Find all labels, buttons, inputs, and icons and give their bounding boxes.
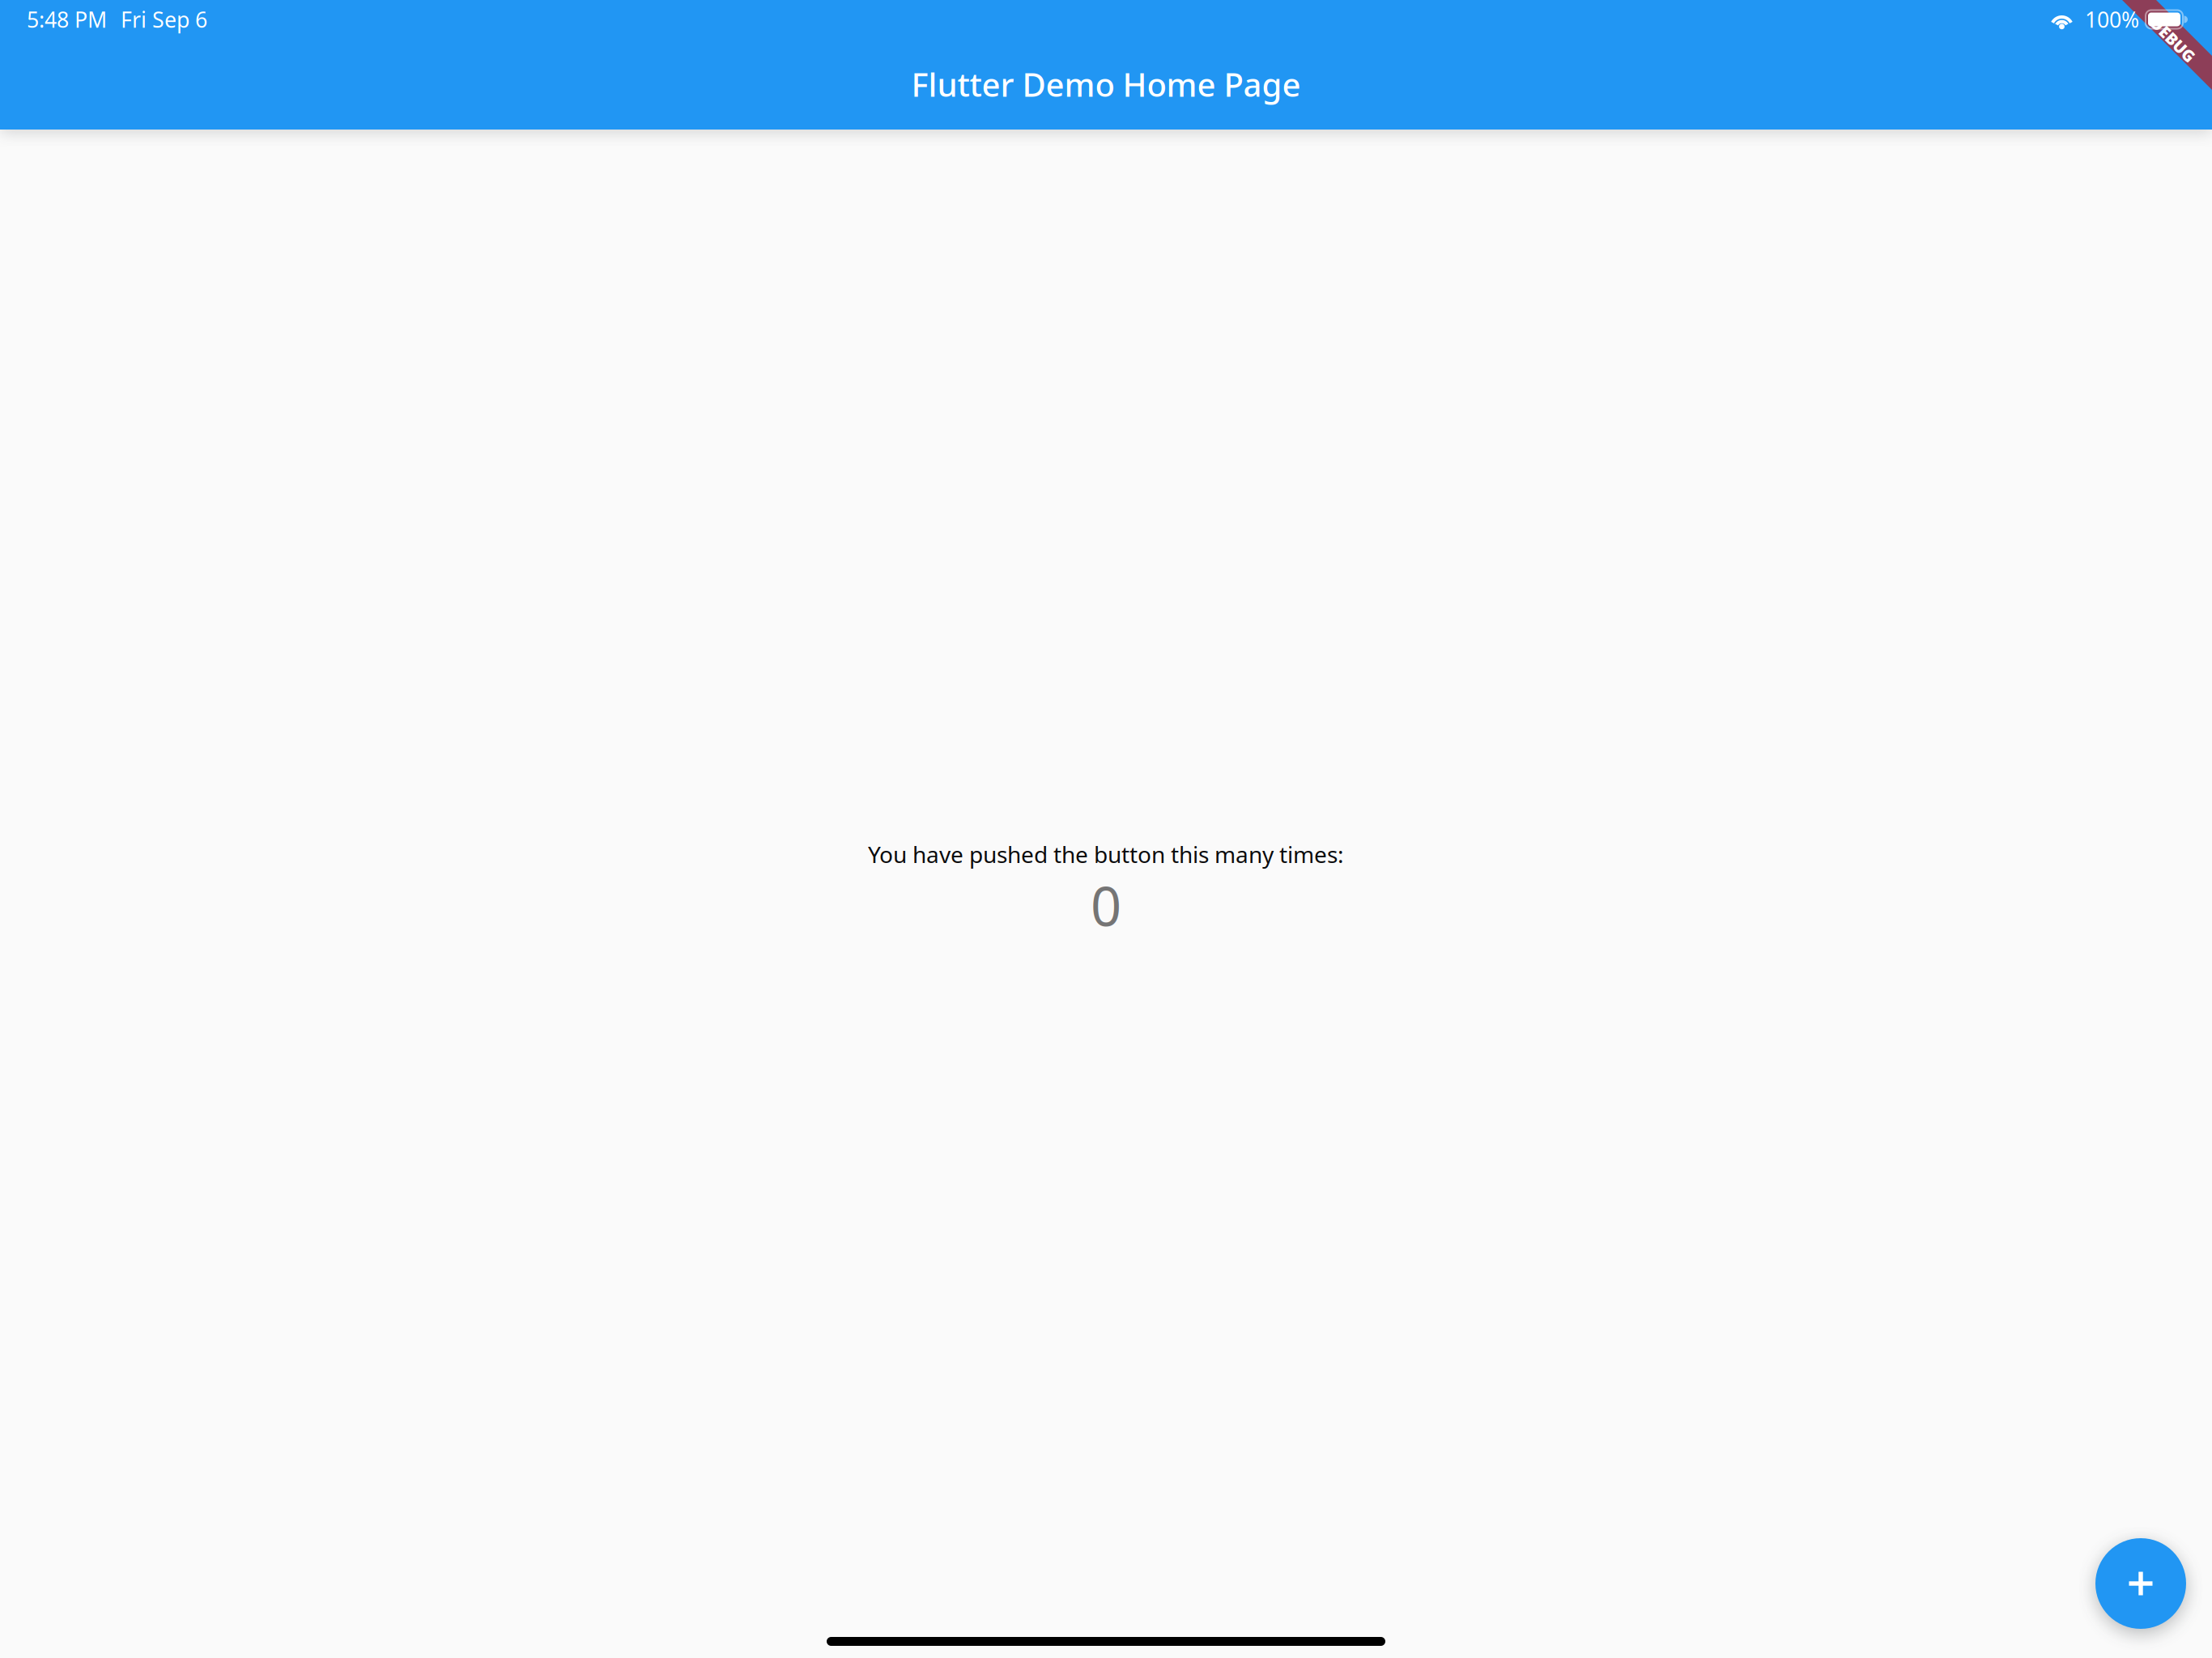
button[interactable]: Increment (2095, 1538, 2186, 1629)
staticText: DEBUG (2145, 29, 2201, 50)
staticText: Fri Sep 6 (121, 5, 207, 34)
staticText: 100% (2085, 5, 2139, 34)
staticText: Flutter Demo Home Page (911, 63, 1301, 106)
staticText: You have pushed the button this many tim… (868, 839, 1344, 869)
staticText: 5:48 PM (27, 5, 107, 34)
staticText: 0 (1091, 869, 1121, 941)
